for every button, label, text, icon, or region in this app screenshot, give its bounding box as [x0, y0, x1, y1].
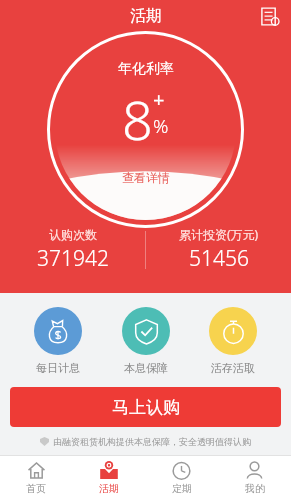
button[interactable]: 本息保障 — [116, 307, 176, 375]
button[interactable]: 累计投资(万元) — [146, 226, 291, 273]
staticText: % — [153, 113, 169, 139]
button[interactable]: 活期 — [72, 455, 145, 500]
button[interactable]: 我的 — [218, 455, 291, 500]
staticText: 371942 — [37, 244, 109, 273]
staticText: 定期 — [172, 482, 192, 495]
staticText: 马上认购 — [112, 397, 180, 418]
button[interactable]: 认购次数 — [0, 227, 145, 273]
staticText: 首页 — [26, 482, 46, 495]
staticText: 8 — [122, 82, 153, 156]
staticText: 年化利率 — [118, 60, 174, 78]
staticText: 活期 — [99, 482, 119, 495]
button[interactable]: 年化利率 — [47, 31, 244, 228]
staticText: 认购次数 — [49, 227, 97, 242]
button[interactable]: Records — [255, 2, 283, 30]
staticText: 51456 — [189, 244, 249, 273]
staticText: 查看详情 — [122, 170, 170, 185]
staticText: 累计投资(万元) — [179, 226, 259, 242]
staticText: 活期 — [130, 6, 162, 26]
staticText: 本息保障 — [124, 361, 168, 375]
button[interactable]: 马上认购 — [10, 387, 281, 427]
button[interactable]: 活存活取 — [203, 307, 263, 375]
staticText: 每日计息 — [36, 361, 80, 375]
staticText: 我的 — [245, 482, 265, 495]
button[interactable]: 每日计息 — [28, 307, 88, 375]
staticText: 由融资租赁机构提供本息保障，安全透明值得认购 — [53, 436, 251, 447]
staticText: 活存活取 — [211, 361, 255, 375]
button[interactable]: 首页 — [0, 455, 72, 500]
staticText: + — [153, 86, 165, 113]
button[interactable]: 定期 — [145, 455, 218, 500]
